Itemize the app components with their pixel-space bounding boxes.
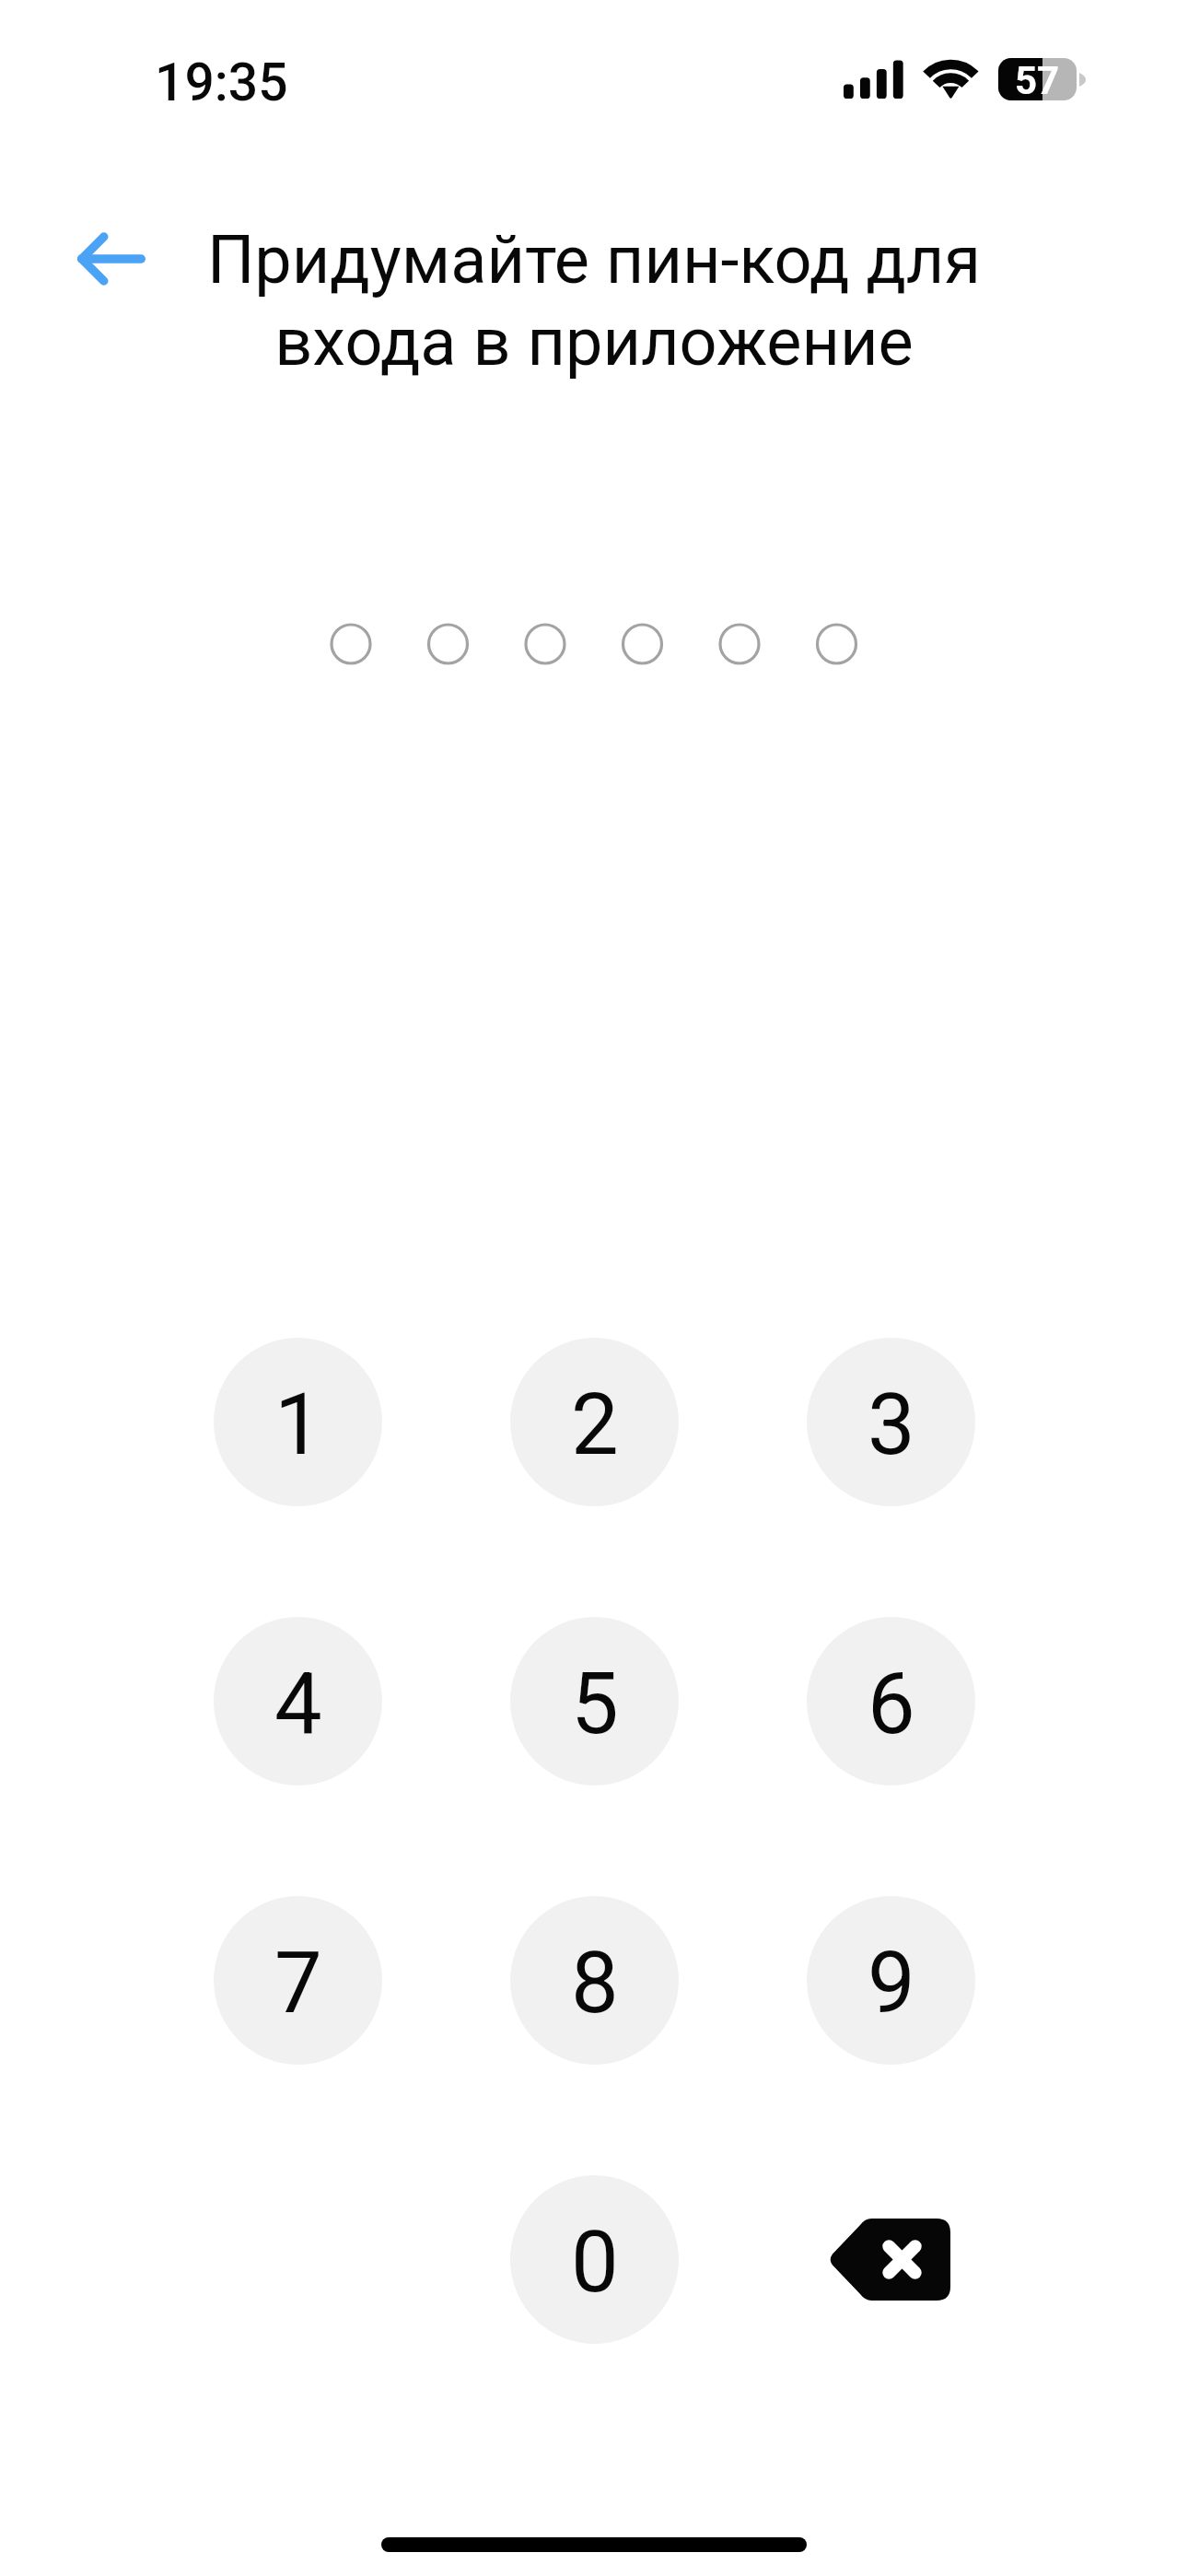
button[interactable]: Delete: [805, 2175, 973, 2344]
button[interactable]: 3: [807, 1338, 975, 1506]
staticText: 57: [1015, 58, 1060, 100]
staticText: 7: [274, 1934, 322, 2033]
button[interactable]: 2: [510, 1338, 679, 1506]
button[interactable]: 4: [214, 1617, 382, 1786]
staticText: 2: [571, 1376, 619, 1475]
staticText: 8: [571, 1934, 619, 2033]
staticText: 9: [868, 1934, 915, 2033]
button[interactable]: 1: [214, 1338, 382, 1506]
staticText: 3: [868, 1376, 915, 1475]
button[interactable]: 8: [510, 1896, 679, 2065]
button[interactable]: 7: [214, 1896, 382, 2065]
staticText: 19:35: [155, 52, 288, 113]
button[interactable]: 0: [510, 2175, 679, 2344]
staticText: 1: [274, 1376, 322, 1475]
staticText: 0: [571, 2213, 619, 2313]
staticText: 6: [868, 1655, 915, 1754]
button[interactable]: 6: [807, 1617, 975, 1786]
button[interactable]: 5: [510, 1617, 679, 1786]
button[interactable]: 9: [807, 1896, 975, 2065]
staticText: Придумайте пин-код для входа в приложени…: [170, 221, 1018, 381]
button[interactable]: Back: [56, 204, 167, 314]
staticText: 5: [571, 1655, 619, 1754]
staticText: 4: [274, 1655, 322, 1754]
